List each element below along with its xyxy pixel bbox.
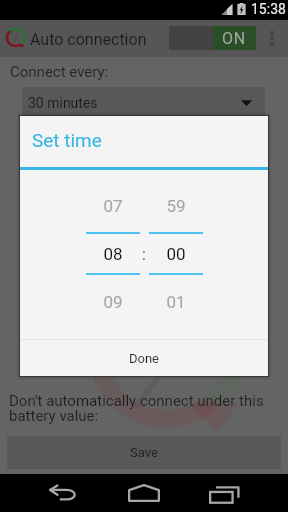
- button[interactable]: Save: [7, 436, 281, 469]
- button[interactable]: ON: [169, 26, 256, 50]
- staticText: :: [142, 245, 146, 263]
- button[interactable]: More options: [262, 20, 282, 57]
- staticText: 59: [149, 196, 203, 216]
- staticText: Auto connection: [30, 30, 147, 49]
- staticText: 30 minutes: [28, 95, 98, 111]
- staticText: 00: [149, 244, 203, 264]
- staticText: Don't automatically connect under this b…: [9, 392, 264, 425]
- button[interactable]: Home: [122, 480, 166, 506]
- staticText: 15:38: [251, 1, 286, 17]
- staticText: Save: [130, 445, 158, 460]
- staticText: ON: [222, 29, 247, 48]
- staticText: Done: [129, 351, 160, 366]
- button[interactable]: 30 minutes: [22, 87, 265, 119]
- button[interactable]: Back: [42, 480, 86, 506]
- staticText: 01: [149, 292, 203, 312]
- staticText: Connect every:: [10, 63, 109, 81]
- button[interactable]: Done: [20, 340, 268, 376]
- staticText: 08: [86, 244, 140, 264]
- staticText: 09: [86, 292, 140, 312]
- staticText: 07: [86, 196, 140, 216]
- button[interactable]: Recent apps: [204, 480, 248, 506]
- staticText: Set time: [32, 129, 102, 151]
